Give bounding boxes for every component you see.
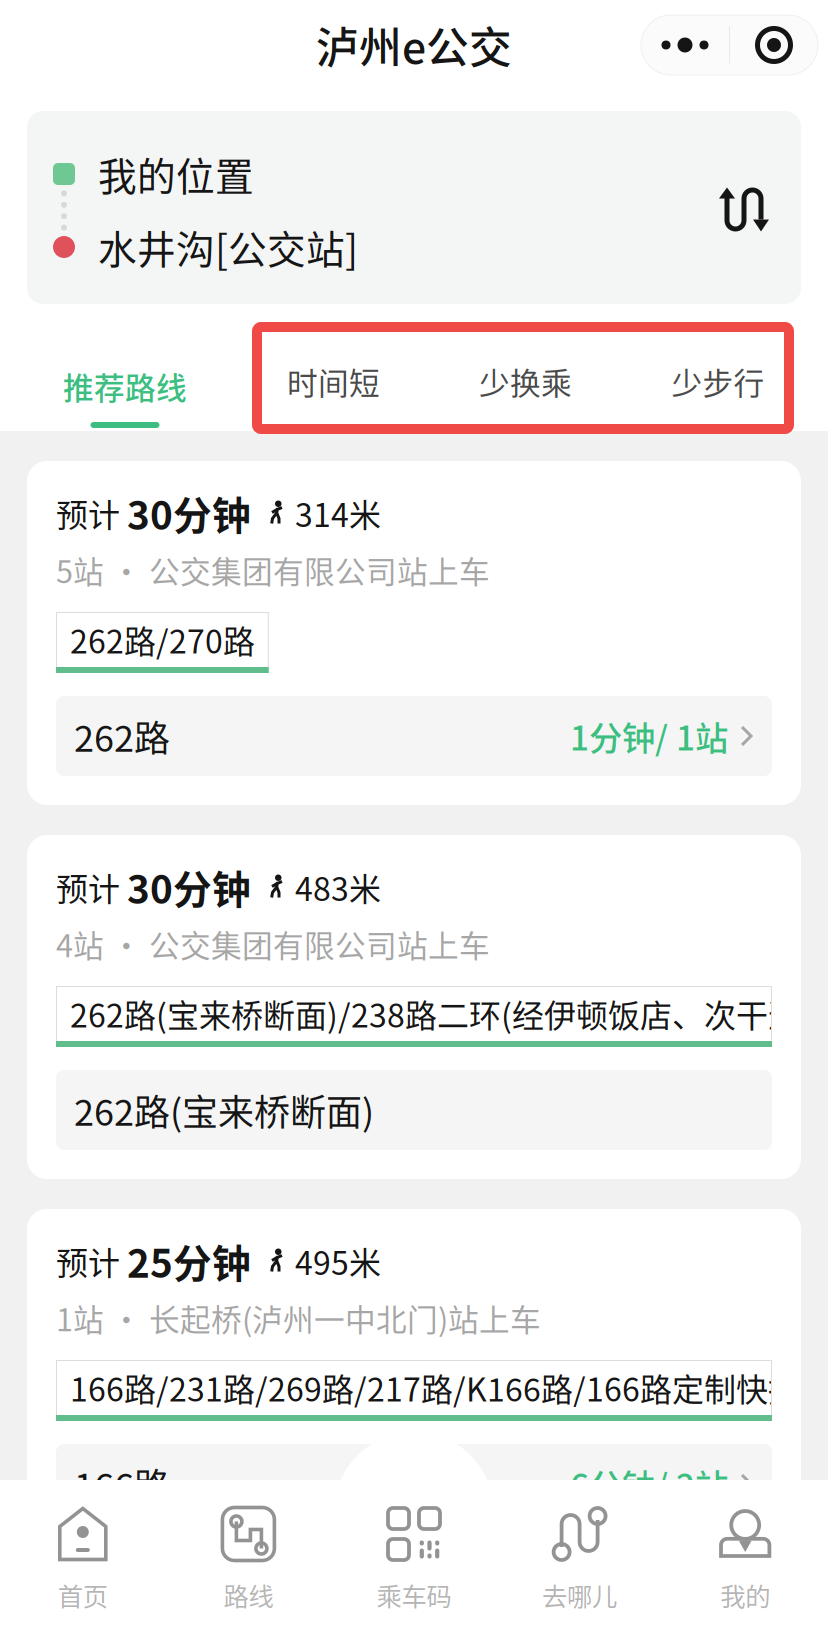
- button[interactable]: 166路: [56, 1444, 772, 1524]
- staticText: 483米: [295, 864, 381, 910]
- button[interactable]: 少换乘: [417, 332, 634, 431]
- staticText: 推荐路线: [63, 364, 187, 408]
- button[interactable]: 推荐路线: [0, 332, 250, 431]
- staticText: 泸州e公交: [316, 14, 512, 76]
- staticText: 我的: [720, 1576, 770, 1613]
- button[interactable]: 去哪儿: [497, 1480, 662, 1651]
- button[interactable]: 时间短: [250, 332, 417, 431]
- staticText: 预计: [56, 490, 127, 536]
- button[interactable]: More: [641, 15, 729, 75]
- staticText: 1分钟/ 1站: [570, 712, 728, 760]
- staticText: 1站 · 长起桥(泸州一中北门)站上车: [56, 1296, 541, 1340]
- button[interactable]: 262路: [56, 696, 772, 776]
- staticText: 6分钟/ 2站: [570, 1460, 728, 1508]
- staticText: 166路/231路/269路/217路/K166路/166路定制快捷车: [70, 1364, 828, 1411]
- staticText: 30分钟: [127, 485, 251, 541]
- button[interactable]: 路线: [166, 1480, 331, 1651]
- staticText: 262路(宝来桥断面)/238路二环(经伊顿饭店、次干道): [70, 990, 811, 1037]
- staticText: 预计: [56, 1238, 127, 1284]
- button[interactable]: 262路(宝来桥断面): [56, 1070, 772, 1150]
- staticText: 262路(宝来桥断面): [74, 1084, 374, 1136]
- staticText: 262路: [74, 710, 170, 762]
- button[interactable]: 少步行: [634, 332, 802, 431]
- staticText: 5站 · 公交集团有限公司站上车: [56, 548, 490, 592]
- button[interactable]: 我的: [662, 1480, 828, 1651]
- staticText: 少换乘: [479, 359, 572, 404]
- staticText: 预计: [56, 864, 127, 910]
- button[interactable]: 首页: [0, 1480, 166, 1651]
- staticText: 乘车码: [376, 1576, 451, 1613]
- staticText: 262路/270路: [70, 616, 255, 663]
- staticText: 166路: [74, 1458, 170, 1510]
- staticText: 25分钟: [127, 1233, 251, 1289]
- staticText: 30分钟: [127, 859, 251, 915]
- staticText: 首页: [58, 1576, 108, 1613]
- staticText: 4站 · 公交集团有限公司站上车: [56, 922, 490, 966]
- staticText: 路线: [223, 1576, 273, 1613]
- button[interactable]: 乘车码: [331, 1480, 497, 1651]
- staticText: 时间短: [287, 359, 380, 404]
- staticText: 水井沟[公交站]: [98, 219, 358, 275]
- staticText: 314米: [295, 490, 381, 536]
- staticText: 我的位置: [98, 146, 254, 202]
- staticText: 去哪儿: [542, 1576, 617, 1613]
- staticText: 495米: [295, 1238, 381, 1284]
- staticText: 少步行: [671, 359, 764, 404]
- button[interactable]: Close mini program: [730, 15, 818, 75]
- button[interactable]: Swap origin and destination: [719, 184, 769, 236]
